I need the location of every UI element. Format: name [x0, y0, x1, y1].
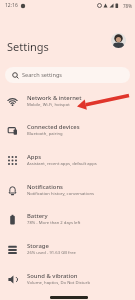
staticText: 26% used - 91.63 GB free — [27, 250, 76, 256]
staticText: 78% — [123, 3, 132, 9]
staticText: Volume, haptics, Do Not Disturb — [27, 280, 90, 286]
button[interactable] — [111, 33, 126, 48]
button[interactable]: Search settings — [5, 67, 130, 83]
staticText: 78% - More than 2 days left — [27, 220, 81, 226]
staticText: Storage — [27, 242, 49, 250]
staticText: Battery — [27, 212, 48, 220]
staticText: Settings — [7, 39, 49, 54]
staticText: Connected devices — [27, 123, 80, 131]
button[interactable]: Sound & vibration — [0, 264, 135, 294]
button[interactable]: Network & internet — [0, 86, 135, 116]
button[interactable]: Notifications — [0, 175, 135, 205]
button[interactable]: Battery — [0, 204, 135, 234]
staticText: Notifications — [27, 183, 63, 191]
staticText: 12:16 — [5, 2, 18, 9]
staticText: Notification history, conversations — [27, 191, 95, 197]
button[interactable]: Apps — [0, 145, 135, 175]
staticText: Bluetooth, pairing — [27, 131, 63, 137]
staticText: Sound & vibration — [27, 272, 78, 280]
button[interactable]: Storage — [0, 234, 135, 264]
button[interactable]: Connected devices — [0, 115, 135, 145]
staticText: Assistant, recent apps, default apps — [27, 161, 97, 167]
staticText: Search settings — [22, 71, 63, 79]
staticText: Apps — [27, 153, 42, 161]
staticText: Mobile, Wi-Fi, hotspot — [27, 102, 70, 108]
staticText: Network & internet — [27, 94, 82, 102]
